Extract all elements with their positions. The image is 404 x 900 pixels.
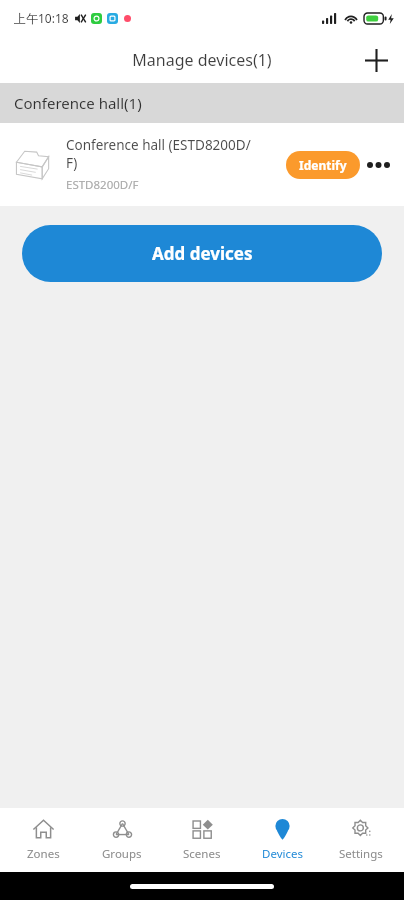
button[interactable]: Add devices xyxy=(22,225,382,282)
staticText: Settings xyxy=(339,846,383,862)
button[interactable]: Devices xyxy=(245,808,319,872)
button[interactable]: Zones xyxy=(6,808,80,872)
button[interactable]: Groups xyxy=(85,808,159,872)
staticText: 上午10:18 xyxy=(14,10,69,26)
button[interactable]: Settings xyxy=(324,808,398,872)
button[interactable]: Scenes xyxy=(165,808,239,872)
button[interactable]: Conference hall(1) xyxy=(0,83,404,123)
staticText: ESTD8200D/F xyxy=(66,177,139,193)
staticText: Add devices xyxy=(152,242,253,265)
staticText: Conference hall (ESTD8200D/ F) xyxy=(66,136,251,172)
staticText: Devices xyxy=(262,846,303,862)
staticText: Manage devices(1) xyxy=(132,49,272,71)
staticText: Zones xyxy=(27,846,60,862)
staticText: Scenes xyxy=(183,846,221,862)
button[interactable]: Conference hall (ESTD8200D/ F) xyxy=(0,123,404,206)
staticText: Identify xyxy=(299,157,347,173)
staticText: Groups xyxy=(102,846,142,862)
button[interactable]: Add device xyxy=(354,38,398,82)
button[interactable]: Identify xyxy=(286,151,360,179)
staticText: Conference hall(1) xyxy=(14,93,142,113)
button[interactable]: More options xyxy=(360,147,396,183)
